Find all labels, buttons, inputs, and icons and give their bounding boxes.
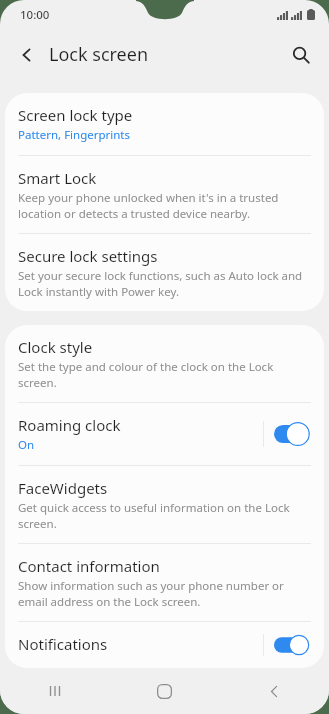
- staticText: Secure lock settings: [18, 246, 158, 266]
- button[interactable]: Roaming clock: [5, 403, 324, 465]
- button[interactable]: Notifications: [5, 622, 324, 668]
- button[interactable]: Screen lock type: [5, 93, 324, 155]
- staticText: Smart Lock: [18, 168, 97, 188]
- staticText: Lock screen: [49, 42, 149, 67]
- button[interactable]: Smart Lock: [5, 156, 324, 233]
- staticText: Screen lock type: [18, 105, 133, 125]
- staticText: Clock style: [18, 337, 93, 357]
- button[interactable]: FaceWidgets: [5, 466, 324, 543]
- button[interactable]: Toggle Roaming clock: [274, 421, 314, 447]
- button[interactable]: Search: [281, 35, 321, 75]
- staticText: Show information such as your phone numb…: [18, 578, 306, 609]
- staticText: 10:00: [20, 7, 50, 23]
- button[interactable]: Clock style: [5, 325, 324, 402]
- button[interactable]: Secure lock settings: [5, 234, 324, 311]
- staticText: Notifications: [18, 634, 108, 654]
- button[interactable]: Back: [7, 35, 47, 75]
- staticText: On: [18, 437, 35, 453]
- staticText: Set your secure lock functions, such as …: [18, 268, 306, 299]
- staticText: Set the type and colour of the clock on …: [18, 359, 306, 390]
- button[interactable]: Toggle Notifications: [274, 634, 314, 656]
- staticText: Contact information: [18, 556, 160, 576]
- button[interactable]: Home: [109, 668, 219, 714]
- staticText: Roaming clock: [18, 415, 121, 435]
- button[interactable]: Contact information: [5, 544, 324, 621]
- staticText: Get quick access to useful information o…: [18, 500, 306, 531]
- staticText: Pattern, Fingerprints: [18, 127, 131, 143]
- button[interactable]: Back: [219, 668, 329, 714]
- button[interactable]: Recents: [0, 668, 109, 714]
- staticText: Keep your phone unlocked when it's in a …: [18, 190, 306, 221]
- staticText: FaceWidgets: [18, 478, 108, 498]
